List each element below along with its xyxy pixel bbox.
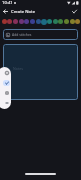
button[interactable]: Colour: [47, 19, 52, 24]
button[interactable]: Notes: [3, 44, 78, 100]
button[interactable]: Colour: [7, 19, 12, 24]
button[interactable]: Colour: [70, 19, 75, 24]
button[interactable]: Colour: [13, 19, 18, 24]
button[interactable]: Select: [0, 78, 11, 88]
button[interactable]: Colour: [30, 19, 35, 24]
button[interactable]: Colour: [36, 19, 41, 24]
button[interactable]: Colour: [58, 19, 63, 24]
button[interactable]: Colour: [24, 19, 29, 24]
button[interactable]: Add stitches: [3, 29, 78, 40]
button[interactable]: Colour: [64, 19, 69, 24]
button[interactable]: Colour: [75, 19, 80, 24]
button[interactable]: More: [0, 98, 11, 108]
button[interactable]: Colour: [53, 19, 58, 24]
staticText: 10:41: [2, 0, 13, 6]
button[interactable]: Colour: [41, 19, 47, 25]
staticText: Create Note: [11, 9, 36, 15]
button[interactable]: Save: [69, 6, 80, 17]
staticText: Notes: [13, 66, 23, 71]
button[interactable]: Preview: [0, 68, 11, 78]
button[interactable]: Colour: [19, 19, 24, 24]
button[interactable]: Settings: [0, 88, 11, 98]
button[interactable]: Back: [0, 6, 11, 17]
staticText: Add stitches: [12, 32, 32, 37]
button[interactable]: Colour: [2, 19, 7, 24]
